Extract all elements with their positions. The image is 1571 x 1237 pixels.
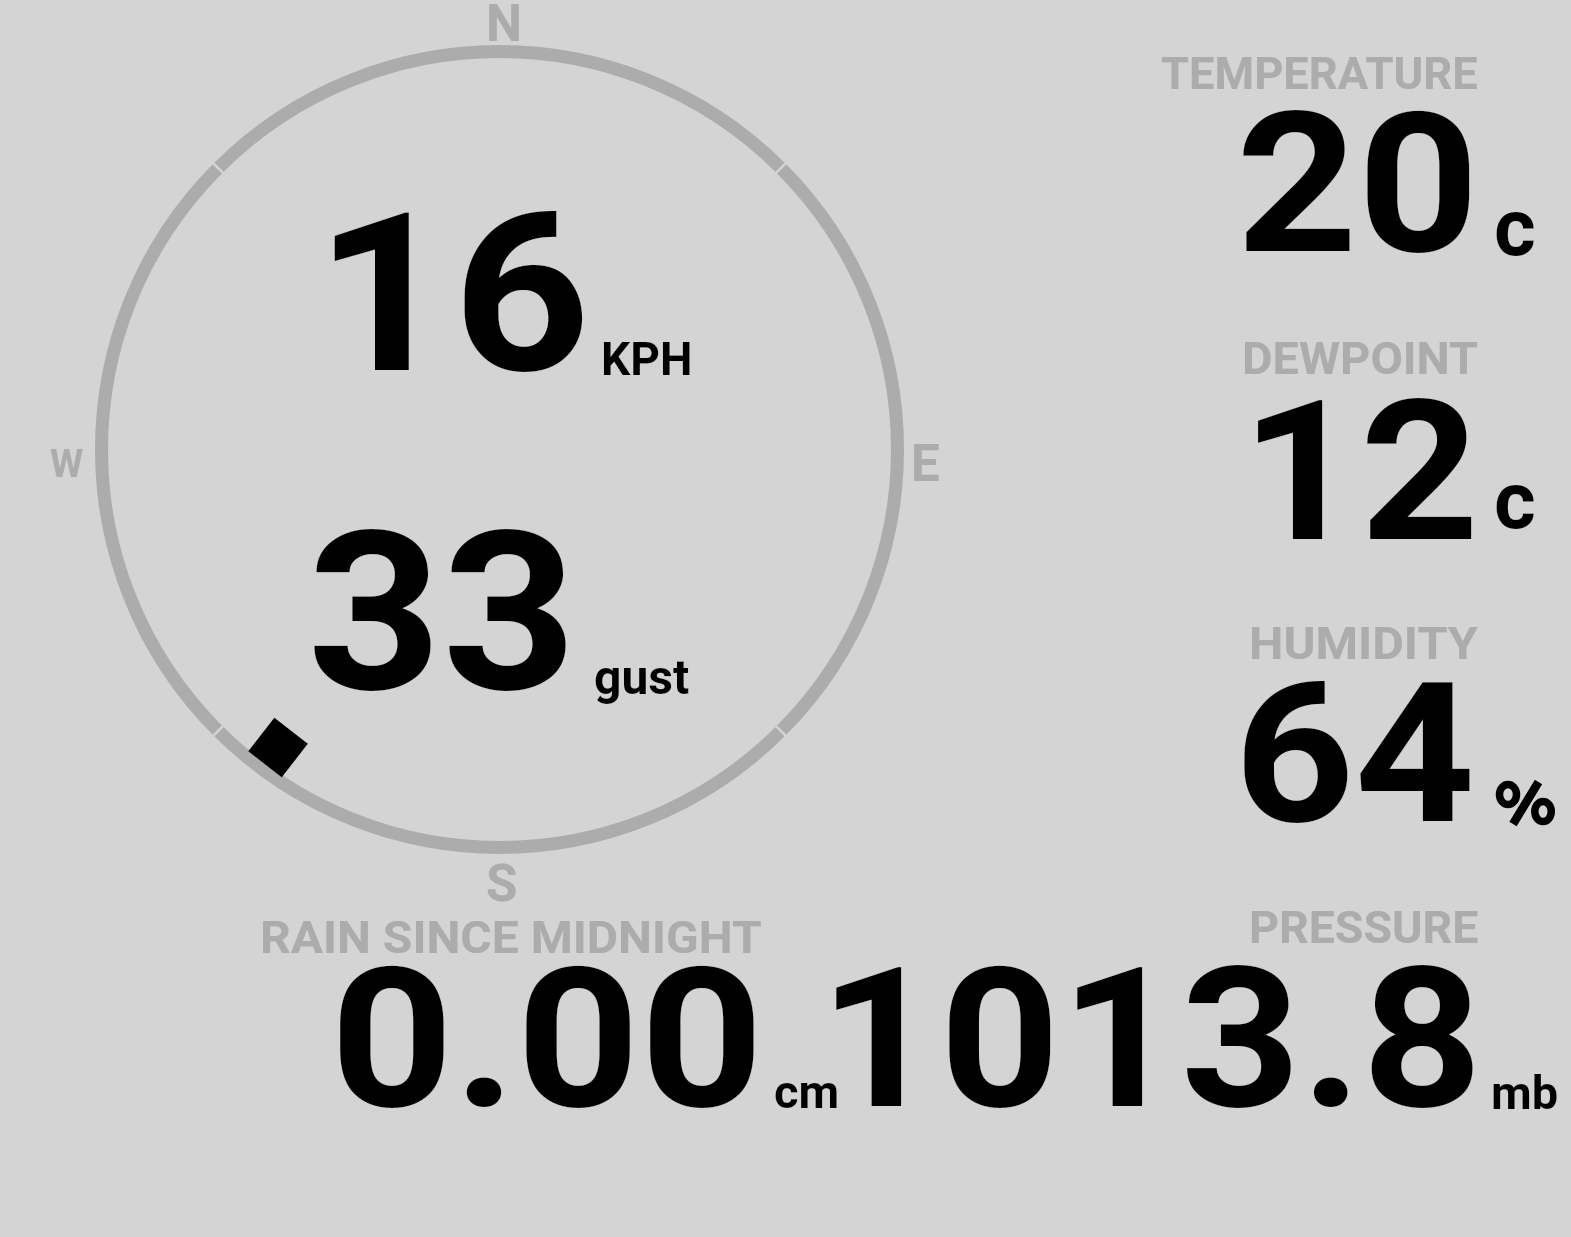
staticText: N (486, 0, 523, 54)
button[interactable]: Temperature 20 degrees Celsius (1140, 35, 1560, 270)
staticText: mb (1491, 1065, 1559, 1120)
staticText: PRESSURE (1249, 901, 1479, 954)
staticText: cm (774, 1064, 840, 1119)
staticText: KPH (601, 332, 693, 386)
button[interactable]: Rain since midnight 0.00 centimetres (255, 895, 845, 1120)
button[interactable]: Wind compass, 16 KPH, gusting 33, south-… (100, 50, 900, 850)
staticText: HUMIDITY (1249, 617, 1478, 670)
staticText: RAIN SINCE MIDNIGHT (260, 911, 763, 964)
button[interactable]: Dew point 12 degrees Celsius (1140, 320, 1560, 555)
button[interactable]: Pressure 1013.8 millibars (850, 895, 1560, 1120)
staticText: W (50, 442, 84, 487)
staticText: 33 (307, 485, 578, 743)
staticText: c (1494, 181, 1536, 275)
staticText: TEMPERATURE (1161, 47, 1478, 100)
staticText: DEWPOINT (1242, 332, 1479, 385)
staticText: 0.00 (330, 925, 764, 1154)
staticText: 64 (1234, 640, 1475, 869)
staticText: S (486, 854, 518, 914)
staticText: 20 (1236, 70, 1479, 299)
staticText: gust (594, 649, 690, 705)
staticText: c (1494, 454, 1536, 548)
staticText: E (911, 434, 940, 494)
staticText: 1013.8 (819, 925, 1483, 1154)
button[interactable]: Humidity 64 percent (1140, 605, 1560, 840)
staticText: 16 (315, 166, 591, 424)
staticText: 12 (1241, 358, 1479, 587)
